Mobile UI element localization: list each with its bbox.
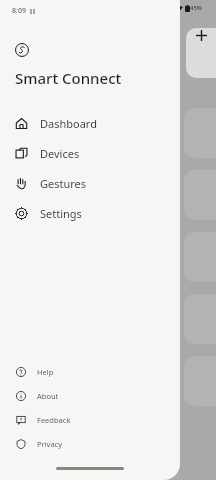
staticText: Help: [37, 367, 54, 377]
button[interactable]: Dashboard: [0, 108, 180, 138]
staticText: Gestures: [40, 176, 87, 191]
staticText: Devices: [40, 146, 80, 161]
staticText: Smart Connect: [15, 68, 122, 88]
staticText: Dashboard: [40, 116, 97, 131]
button[interactable]: Help: [0, 360, 180, 384]
button[interactable]: About: [0, 384, 180, 408]
staticText: 8:09: [12, 6, 26, 16]
button[interactable]: Gestures: [0, 168, 180, 198]
button[interactable]: Settings: [0, 198, 180, 228]
button[interactable]: Devices: [0, 138, 180, 168]
staticText: Privacy: [37, 439, 63, 449]
staticText: Settings: [40, 206, 82, 221]
button[interactable]: Privacy: [0, 432, 180, 456]
button[interactable]: Add device: [190, 24, 212, 46]
staticText: Feedback: [37, 415, 71, 425]
button[interactable]: Feedback: [0, 408, 180, 432]
staticText: 45%: [190, 4, 202, 12]
staticText: About: [37, 391, 59, 401]
